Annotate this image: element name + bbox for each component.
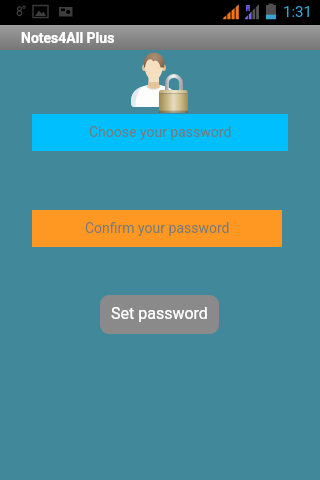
staticText: 1:31 xyxy=(283,3,312,21)
staticText: Set password xyxy=(111,304,208,323)
button[interactable]: Set password xyxy=(100,295,219,334)
staticText: Notes4All Plus xyxy=(21,30,115,46)
staticText: Confirm your password xyxy=(85,220,230,236)
other: Secure notes xyxy=(128,50,192,115)
staticText: Choose your password xyxy=(89,124,232,140)
button[interactable]: Choose your password xyxy=(32,114,288,151)
button[interactable]: Confirm your password xyxy=(32,210,282,247)
